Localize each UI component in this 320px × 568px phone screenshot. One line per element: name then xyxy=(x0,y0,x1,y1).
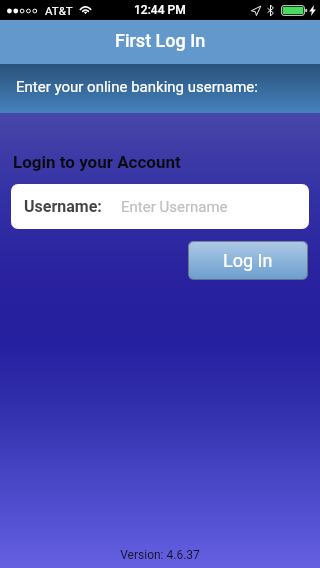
staticText: Log In xyxy=(223,250,273,271)
other: Battery xyxy=(281,5,308,16)
staticText: First Log In xyxy=(115,30,206,51)
button[interactable]: Username: xyxy=(11,184,309,229)
button[interactable]: Log In xyxy=(188,241,308,280)
staticText: Enter your online banking username: xyxy=(16,78,258,96)
other: Location xyxy=(251,5,261,16)
staticText: AT&T xyxy=(45,4,73,17)
staticText: 12:44 PM xyxy=(134,3,186,17)
staticText: Enter Username xyxy=(121,198,228,216)
staticText: Username: xyxy=(24,197,102,216)
other: Bluetooth xyxy=(267,5,274,16)
staticText: Version: 4.6.37 xyxy=(0,548,320,562)
staticText: Login to your Account xyxy=(13,152,181,172)
